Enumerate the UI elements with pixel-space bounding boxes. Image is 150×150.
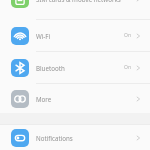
button[interactable]: Notifications (0, 125, 150, 150)
staticText: On (124, 32, 131, 39)
staticText: On (124, 64, 131, 71)
button[interactable]: Wi-Fi (0, 20, 150, 51)
button[interactable]: Bluetooth (0, 52, 150, 83)
staticText: More (36, 95, 52, 103)
staticText: Bluetooth (36, 64, 65, 72)
staticText: Notifications (36, 134, 73, 142)
button[interactable]: More (0, 84, 150, 113)
staticText: SIM cards & mobile networks (36, 0, 121, 3)
button[interactable]: SIM cards & mobile networks (0, 0, 150, 19)
staticText: Wi-Fi (36, 32, 51, 40)
